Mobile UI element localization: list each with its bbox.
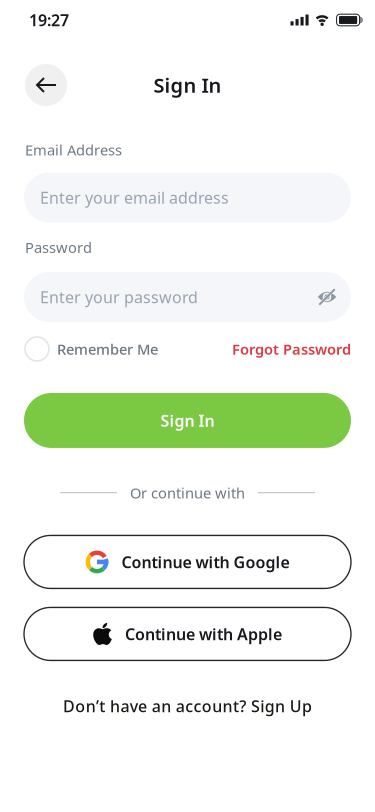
button[interactable]: Continue with Apple [24,607,351,660]
staticText: Don’t have an account? Sign Up [63,695,312,717]
button[interactable]: Continue with Google [24,535,351,588]
staticText: Or continue with [130,483,245,502]
staticText: Remember Me [57,339,158,359]
staticText: Password [25,237,92,257]
button[interactable]: Forgot Password [232,339,351,359]
staticText: Enter your email address [40,187,229,208]
staticText: Sign In [160,410,214,431]
staticText: 19:27 [29,9,69,31]
button[interactable]: Show password [317,287,337,307]
button[interactable]: Sign Up [63,695,312,717]
staticText: Enter your password [40,286,198,307]
staticText: Sign In [153,72,221,98]
staticText: Continue with Apple [125,623,282,644]
staticText: Forgot Password [232,339,351,359]
staticText: Continue with Google [121,551,289,572]
button[interactable]: Remember Me [25,337,158,361]
button[interactable]: Sign In [24,393,351,448]
staticText: Email Address [25,140,122,159]
button[interactable]: Back [25,64,67,106]
